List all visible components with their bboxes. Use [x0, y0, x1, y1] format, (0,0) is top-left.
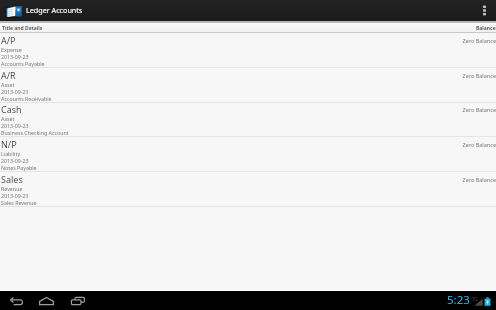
staticText: Zero Balance: [462, 141, 496, 148]
staticText: Business Checking Account: [1, 129, 69, 136]
staticText: Revenue: [1, 185, 23, 192]
staticText: Zero Balance: [462, 106, 496, 113]
staticText: A/R: [1, 69, 16, 81]
staticText: 2013-09-23: [1, 192, 29, 199]
staticText: Asset: [1, 81, 15, 88]
staticText: 2013-09-23: [1, 53, 29, 60]
staticText: Cash: [1, 103, 22, 115]
staticText: Sales: [1, 173, 23, 185]
button[interactable]: N/P: [0, 137, 496, 172]
staticText: Notes Payable: [1, 164, 37, 171]
button[interactable]: Back: [4, 291, 28, 310]
staticText: 2013-09-23: [1, 88, 29, 95]
button[interactable]: More options: [472, 0, 496, 21]
staticText: Sales Revenue: [1, 199, 37, 206]
staticText: Title and Details: [2, 25, 43, 32]
staticText: 2013-09-23: [1, 157, 29, 164]
staticText: A/P: [1, 34, 16, 46]
staticText: Ledger Accounts: [26, 5, 83, 15]
staticText: Liability: [1, 150, 21, 157]
button[interactable]: Home: [34, 291, 58, 310]
staticText: Accounts Receivable: [1, 95, 52, 102]
staticText: Asset: [1, 115, 15, 122]
staticText: Zero Balance: [462, 72, 496, 79]
button[interactable]: A/P: [0, 33, 496, 68]
staticText: 2013-09-23: [1, 122, 29, 129]
staticText: Expense: [1, 46, 22, 53]
button[interactable]: Recent apps: [66, 291, 90, 310]
staticText: 5:23: [447, 292, 470, 308]
button[interactable]: Cash: [0, 102, 496, 137]
staticText: N/P: [1, 138, 17, 150]
staticText: Zero Balance: [462, 176, 496, 183]
staticText: Accounts Payable: [1, 60, 45, 67]
staticText: 3G: [472, 296, 478, 302]
staticText: Balance: [476, 25, 496, 32]
button[interactable]: A/R: [0, 68, 496, 103]
button[interactable]: Sales: [0, 172, 496, 207]
staticText: Zero Balance: [462, 37, 496, 44]
